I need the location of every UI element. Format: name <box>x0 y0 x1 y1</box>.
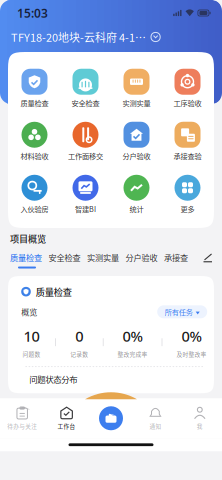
button[interactable]: 质量检查 <box>10 252 42 263</box>
staticText: 工作台 <box>58 422 76 430</box>
staticText: TFY18-20地块-云科府 4-1… <box>11 29 146 45</box>
button[interactable]: 统计 <box>111 170 162 218</box>
staticText: 10 <box>23 326 39 346</box>
staticText: 承接查 <box>164 252 188 263</box>
staticText: 质量检查 <box>20 97 48 108</box>
staticText: 材料验收 <box>20 150 48 161</box>
staticText: 概览 <box>21 306 37 318</box>
button[interactable]: 更多 <box>162 170 213 218</box>
staticText: 智建BI <box>75 203 96 214</box>
button[interactable]: 实测实量 <box>87 252 119 263</box>
button[interactable]: 待办与关注 <box>0 398 44 438</box>
button[interactable]: 工序验收 <box>162 64 213 112</box>
staticText: 所有任务 <box>165 307 193 317</box>
staticText: 通知 <box>149 422 161 430</box>
button[interactable]: 承接查验 <box>162 117 213 165</box>
button[interactable]: 智建BI <box>60 170 111 218</box>
staticText: 待办与关注 <box>7 422 37 430</box>
staticText: 实测实量 <box>122 97 150 108</box>
staticText: 15:03 <box>17 5 48 21</box>
button[interactable]: Camera <box>89 398 133 438</box>
staticText: 质量检查 <box>10 252 42 263</box>
staticText: 入伙验房 <box>20 203 48 214</box>
button[interactable]: 我 <box>178 398 222 438</box>
button[interactable]: 承接查 <box>164 252 188 263</box>
button[interactable]: 质量检查 <box>9 64 60 112</box>
button[interactable]: 安全检查 <box>48 252 80 263</box>
staticText: 分户验收 <box>122 150 150 161</box>
staticText: 工作面移交 <box>68 150 103 161</box>
button[interactable]: 工作台 <box>44 398 89 438</box>
button[interactable]: Edit tabs <box>203 253 212 262</box>
button[interactable]: 材料验收 <box>9 117 60 165</box>
staticText: 记录数 <box>70 350 88 358</box>
button[interactable]: 工作面移交 <box>60 117 111 165</box>
staticText: 更多 <box>180 203 194 214</box>
staticText: 0 <box>75 326 83 346</box>
staticText: 问题数 <box>22 350 40 358</box>
staticText: 项目概览 <box>10 232 46 245</box>
staticText: 工序验收 <box>173 97 201 108</box>
staticText: 我 <box>197 422 203 430</box>
button[interactable]: 分户验收 <box>125 252 157 263</box>
button[interactable]: 分户验收 <box>111 117 162 165</box>
staticText: 实测实量 <box>87 252 119 263</box>
button[interactable]: 安全检查 <box>60 64 111 112</box>
button[interactable]: 入伙验房 <box>9 170 60 218</box>
button[interactable]: 实测实量 <box>111 64 162 112</box>
staticText: 问题状态分布 <box>29 373 77 385</box>
staticText: 安全检查 <box>48 252 80 263</box>
staticText: 质量检查 <box>36 285 72 298</box>
staticText: 及时整改率 <box>176 350 206 358</box>
staticText: 0% <box>181 326 201 346</box>
button[interactable]: 所有任务 <box>157 305 207 318</box>
button[interactable]: TFY18-20地块-云科府 4-1… <box>0 26 222 48</box>
staticText: 统计 <box>129 203 143 214</box>
button[interactable]: 通知 <box>133 398 178 438</box>
staticText: 分户验收 <box>125 252 157 263</box>
staticText: 安全检查 <box>71 97 99 108</box>
staticText: 承接查验 <box>173 150 201 161</box>
staticText: 0% <box>123 326 143 346</box>
staticText: 整改完成率 <box>118 350 148 358</box>
